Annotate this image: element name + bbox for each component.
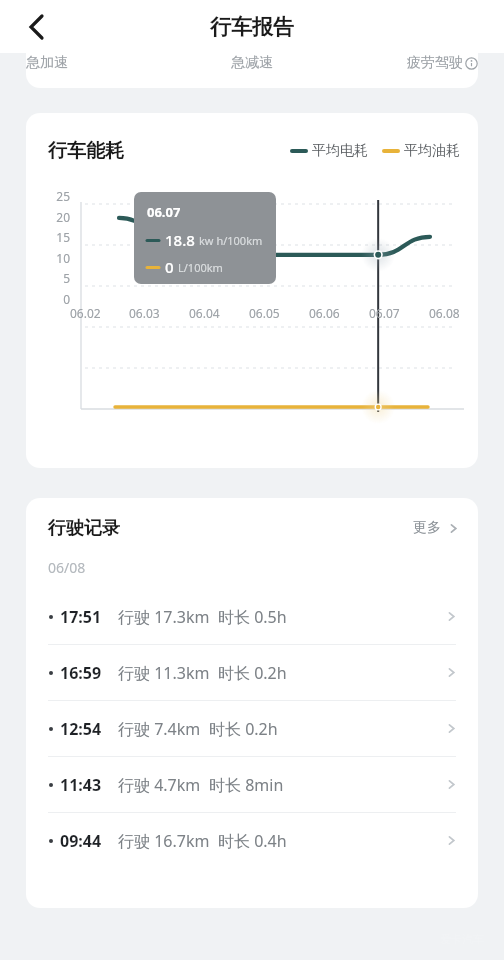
staticText: 11:43 (60, 774, 102, 796)
staticText: 时长 0.2h (218, 662, 287, 684)
staticText: 时长 8min (209, 774, 284, 796)
button[interactable]: 16:59 (26, 645, 478, 700)
staticText: 行驶 16.7km (118, 830, 210, 852)
button[interactable]: 09:44 (26, 813, 478, 868)
staticText: 09:44 (60, 830, 102, 852)
staticText: 行车能耗 (48, 139, 124, 163)
staticText: 06.05 (249, 305, 280, 321)
staticText: 行车报告 (210, 14, 294, 40)
staticText: 时长 0.2h (209, 718, 278, 740)
staticText: 急减速 (231, 54, 273, 72)
button[interactable]: 17:51 (26, 589, 478, 644)
staticText: 06.06 (309, 305, 340, 321)
staticText: 5 (26, 270, 70, 286)
staticText: 18.8 (165, 230, 195, 250)
staticText: kw h/100km (199, 233, 263, 248)
staticText: 疲劳驾驶 (407, 54, 463, 72)
button[interactable]: Back (14, 5, 58, 49)
staticText: 06.04 (189, 305, 220, 321)
staticText: 06.03 (129, 305, 160, 321)
staticText: 06.08 (429, 305, 460, 321)
staticText: 行驶 17.3km (118, 606, 210, 628)
staticText: 25 (26, 188, 70, 204)
staticText: 行驶 4.7km (118, 774, 201, 796)
staticText: 06.02 (70, 305, 101, 321)
staticText: L/100km (178, 260, 223, 275)
staticText: 急加速 (26, 54, 68, 72)
staticText: 行驶 7.4km (118, 718, 201, 740)
staticText: 平均油耗 (404, 142, 460, 160)
staticText: 10 (26, 250, 70, 266)
staticText: 12:54 (60, 718, 102, 740)
button[interactable]: 行驶记录 (26, 498, 478, 558)
staticText: 17:51 (60, 606, 102, 628)
staticText: 06.07 (369, 305, 400, 321)
staticText: 16:59 (60, 662, 102, 684)
staticText: 0 (165, 257, 174, 277)
staticText: 时长 0.4h (218, 830, 287, 852)
staticText: 行驶记录 (48, 517, 120, 540)
staticText: 更多 (413, 519, 441, 537)
staticText: 0 (26, 291, 70, 307)
staticText: 20 (26, 209, 70, 225)
staticText: 时长 0.5h (218, 606, 287, 628)
button[interactable]: 12:54 (26, 701, 478, 756)
staticText: 行驶 11.3km (118, 662, 210, 684)
staticText: 06/08 (48, 558, 86, 577)
button[interactable]: 11:43 (26, 757, 478, 812)
staticText: 平均电耗 (312, 142, 368, 160)
staticText: 15 (26, 229, 70, 245)
staticText: 06.07 (147, 203, 181, 221)
